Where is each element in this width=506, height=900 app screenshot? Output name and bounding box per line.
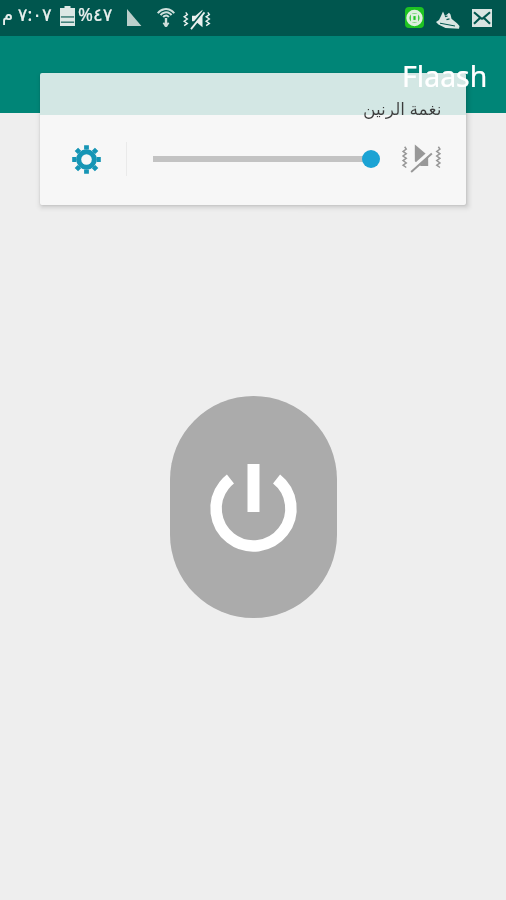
staticText: نغمة الرنين (363, 97, 442, 120)
button[interactable]: Power (170, 396, 337, 618)
staticText: Flaash (402, 57, 488, 96)
button[interactable]: Volume (144, 139, 380, 179)
staticText: %٤٧ (78, 2, 113, 27)
staticText: ٧:٠٧ م (2, 2, 52, 27)
button[interactable]: Sound settings (56, 129, 116, 189)
button[interactable]: Ringer mode (397, 133, 445, 181)
